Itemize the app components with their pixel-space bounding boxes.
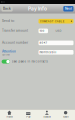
staticText: Attention <box>2 50 16 53</box>
staticText: monthly bill <box>40 51 57 54</box>
staticText: Transfer <box>43 115 51 118</box>
staticText: More <box>63 115 68 118</box>
button[interactable]: Transfer <box>37 109 56 120</box>
button[interactable]: More <box>56 109 75 120</box>
staticText: Next <box>65 7 72 11</box>
button[interactable]: Back <box>1 6 13 11</box>
button[interactable]: Save payee in my contacts <box>2 60 47 64</box>
button[interactable]: 8547 <box>38 41 73 45</box>
staticText: Account number <box>2 41 28 44</box>
staticText: Back <box>3 7 11 11</box>
button[interactable]: Home <box>0 109 19 120</box>
button[interactable]: COMCAST CABLE <box>38 19 73 23</box>
staticText: Send to: <box>2 19 15 23</box>
button[interactable]: Pay <box>19 109 38 120</box>
staticText: Pay Info <box>28 6 47 12</box>
staticText: USD <box>55 29 61 32</box>
staticText: Save payee in my contacts <box>11 60 47 63</box>
staticText: Transfer amount <box>2 29 28 32</box>
staticText: 8547 <box>40 41 48 44</box>
staticText: Pay <box>26 115 30 118</box>
staticText: Home <box>6 115 12 118</box>
button[interactable]: Next <box>63 6 73 11</box>
button[interactable]: 100 <box>38 29 48 33</box>
staticText: COMCAST CABLE <box>40 20 65 23</box>
staticText: 100 <box>40 29 45 32</box>
staticText: optional <box>2 53 10 56</box>
button[interactable]: monthly bill <box>38 50 73 55</box>
